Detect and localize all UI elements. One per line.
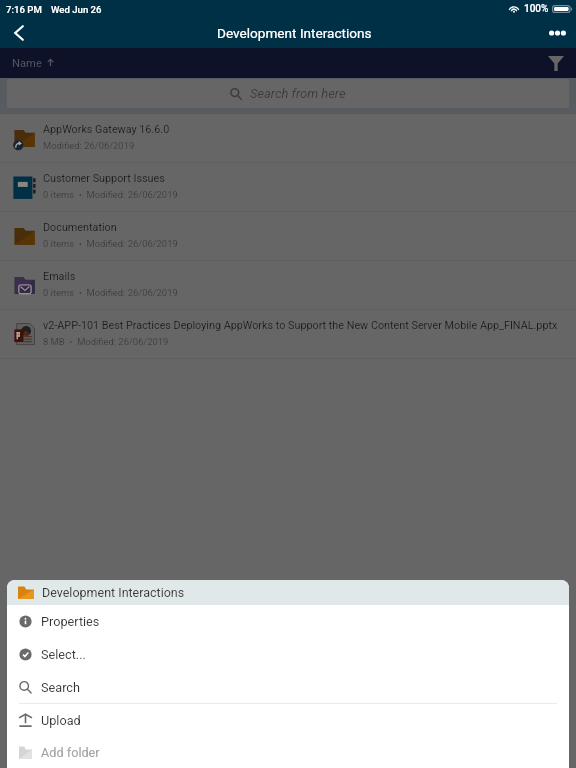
staticText: Documentation bbox=[43, 221, 117, 234]
button[interactable]: Properties bbox=[7, 605, 569, 638]
button[interactable]: Add folder bbox=[7, 737, 569, 768]
staticText: Customer Support Issues bbox=[43, 172, 165, 185]
staticText: 0 items • Modified: 26/06/2019 bbox=[43, 287, 178, 298]
staticText: Upload bbox=[41, 713, 81, 728]
staticText: Name bbox=[12, 57, 42, 70]
staticText: 0 items • Modified: 26/06/2019 bbox=[43, 189, 178, 200]
button[interactable]: Search from here bbox=[7, 79, 569, 108]
button[interactable]: Customer Support Issues bbox=[0, 163, 576, 212]
staticText: AppWorks Gateway 16.6.0 bbox=[43, 123, 170, 136]
staticText: 7:16 PM bbox=[6, 4, 42, 15]
button[interactable]: Upload bbox=[7, 704, 569, 737]
staticText: 8 MB • Modified: 26/06/2019 bbox=[43, 336, 169, 347]
button[interactable]: AppWorks Gateway 16.6.0 bbox=[0, 114, 576, 163]
button[interactable]: Documentation bbox=[0, 212, 576, 261]
staticText: Development Interactions bbox=[217, 25, 372, 41]
button[interactable]: Emails bbox=[0, 261, 576, 310]
staticText: Select... bbox=[41, 647, 86, 662]
staticText: 0 items • Modified: 26/06/2019 bbox=[43, 238, 178, 249]
button[interactable]: Name bbox=[12, 57, 54, 70]
button[interactable]: More options bbox=[538, 18, 576, 48]
button[interactable]: Search bbox=[7, 671, 569, 704]
staticText: Add folder bbox=[41, 745, 100, 760]
staticText: v2-APP-101 Best Practices Deploying AppW… bbox=[43, 319, 558, 332]
button[interactable]: Back bbox=[0, 18, 38, 48]
staticText: Development Interactions bbox=[42, 585, 185, 600]
staticText: Search bbox=[41, 680, 80, 695]
button[interactable]: v2-APP-101 Best Practices Deploying AppW… bbox=[0, 310, 576, 359]
button[interactable]: Select... bbox=[7, 638, 569, 671]
staticText: Search from here bbox=[250, 86, 346, 101]
button[interactable]: Filter bbox=[542, 48, 576, 78]
button[interactable]: Development Interactions bbox=[7, 580, 569, 605]
staticText: Emails bbox=[43, 270, 76, 283]
staticText: Wed Jun 26 bbox=[51, 4, 102, 15]
staticText: Properties bbox=[41, 614, 100, 629]
staticText: Modified: 26/06/2019 bbox=[43, 140, 135, 151]
staticText: 100% bbox=[524, 3, 549, 15]
